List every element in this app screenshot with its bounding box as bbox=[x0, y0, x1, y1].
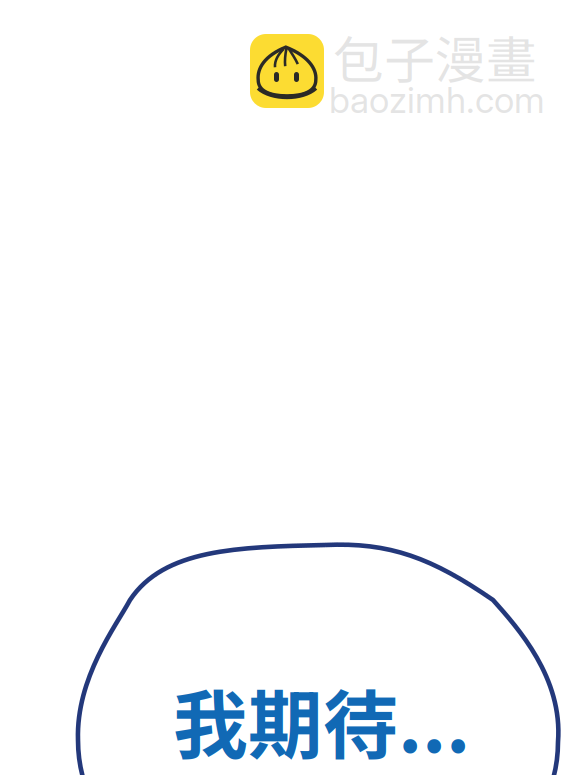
staticText: 包子漫畫 bbox=[333, 20, 537, 93]
staticText: 我期待... bbox=[173, 666, 470, 774]
button[interactable]: Manga page bbox=[0, 0, 565, 775]
button[interactable]: baozimh.com bbox=[250, 34, 545, 118]
staticText: baozimh.com bbox=[329, 78, 545, 122]
